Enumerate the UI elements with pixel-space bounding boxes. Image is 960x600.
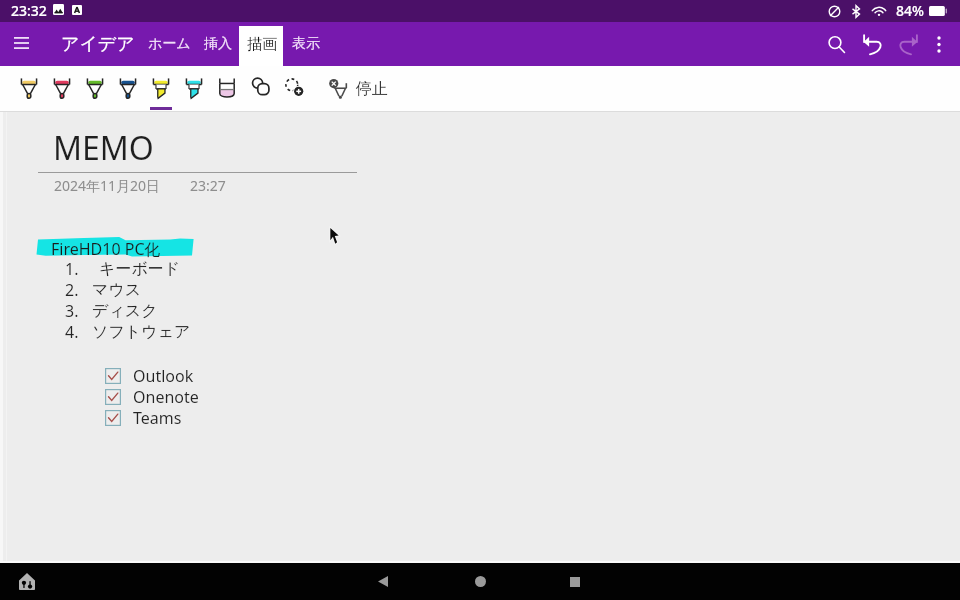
button[interactable]: Undo: [854, 22, 890, 66]
button[interactable]: ホーム: [140, 22, 199, 66]
button[interactable]: Redo: [890, 22, 926, 66]
button[interactable]: Pen: [112, 66, 144, 112]
button[interactable]: Back: [361, 563, 405, 600]
button[interactable]: Highlighter: [178, 66, 210, 112]
button[interactable]: [239, 26, 283, 66]
staticText: 23:32: [11, 1, 47, 20]
button[interactable]: Teams: [105, 407, 182, 429]
button[interactable]: Pen: [46, 66, 78, 112]
button[interactable]: Pen: [13, 66, 45, 112]
button[interactable]: Pen: [79, 66, 111, 112]
staticText: Outlook: [133, 365, 194, 387]
staticText: 84%: [896, 1, 924, 20]
staticText: 4.: [65, 321, 79, 343]
button[interactable]: Home: [458, 563, 502, 600]
button[interactable]: More options: [926, 22, 952, 66]
button[interactable]: Onenote: [105, 386, 199, 408]
button[interactable]: Recents: [553, 563, 597, 600]
staticText: Teams: [133, 407, 182, 429]
button[interactable]: Search: [818, 22, 854, 66]
button[interactable]: Home app shortcut: [13, 563, 41, 600]
button[interactable]: 表示: [284, 22, 328, 66]
button[interactable]: Navigation menu: [0, 22, 42, 66]
staticText: MEMO: [53, 126, 154, 170]
button[interactable]: Highlighter: [145, 66, 177, 112]
button[interactable]: アイデア: [61, 33, 135, 56]
staticText: ディスク: [92, 301, 158, 321]
button[interactable]: Eraser: [211, 66, 243, 112]
staticText: 描画: [247, 35, 277, 54]
button[interactable]: Shapes: [245, 66, 277, 112]
staticText: 停止: [356, 79, 388, 99]
button[interactable]: Outlook: [105, 365, 194, 387]
staticText: 3.: [65, 300, 79, 322]
button[interactable]: 挿入: [196, 22, 240, 66]
staticText: マウス: [92, 280, 142, 300]
staticText: 2.: [65, 279, 79, 301]
staticText: 挿入: [204, 35, 232, 53]
staticText: ソフトウェア: [92, 322, 191, 342]
staticText: 1.: [65, 258, 79, 280]
staticText: 23:27: [190, 176, 226, 195]
staticText: FireHD10 PC化: [51, 238, 161, 260]
button[interactable]: 停止: [330, 66, 388, 112]
button[interactable]: 描画: [239, 22, 285, 66]
staticText: キーボード: [99, 259, 181, 279]
staticText: ホーム: [148, 35, 191, 53]
button[interactable]: Add shape: [278, 66, 310, 112]
staticText: 2024年11月20日: [54, 176, 161, 195]
staticText: 表示: [292, 35, 320, 53]
staticText: Onenote: [133, 386, 199, 408]
